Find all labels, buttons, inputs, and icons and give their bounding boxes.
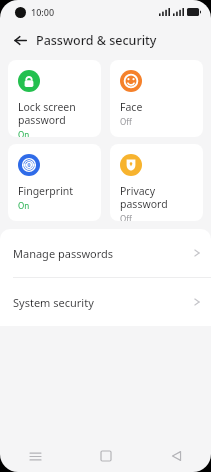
button[interactable]: System security bbox=[0, 278, 211, 326]
staticText: Fingerprint bbox=[18, 184, 74, 198]
staticText: Lock screen password bbox=[18, 100, 76, 127]
staticText: Manage passwords bbox=[13, 246, 114, 261]
staticText: On bbox=[18, 129, 30, 137]
button[interactable]: Recent apps bbox=[0, 440, 71, 472]
staticText: System security bbox=[13, 295, 94, 310]
button[interactable]: Privacy password bbox=[110, 144, 203, 221]
staticText: Off bbox=[120, 116, 132, 127]
button[interactable]: Face bbox=[110, 60, 203, 137]
button[interactable]: Home bbox=[71, 440, 141, 472]
button[interactable]: Lock screen password bbox=[8, 60, 101, 137]
staticText: On bbox=[18, 200, 30, 211]
button[interactable]: Fingerprint bbox=[8, 144, 101, 221]
staticText: Password & security bbox=[36, 32, 157, 49]
staticText: Privacy password bbox=[120, 184, 197, 211]
staticText: Off bbox=[120, 213, 132, 221]
button[interactable]: Back bbox=[8, 28, 32, 52]
staticText: 10:00 bbox=[31, 6, 55, 18]
staticText: Face bbox=[120, 100, 143, 114]
button[interactable]: Back bbox=[141, 440, 211, 472]
button[interactable]: Manage passwords bbox=[0, 229, 211, 277]
